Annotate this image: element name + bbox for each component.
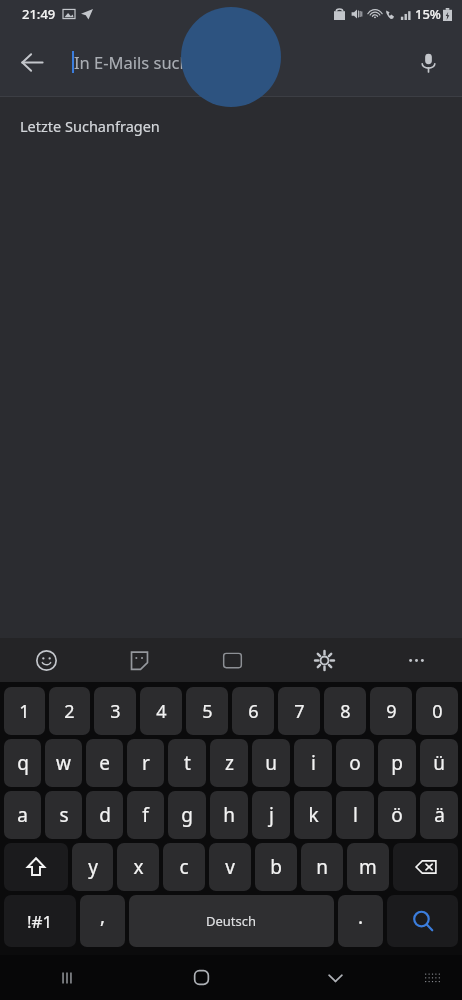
button[interactable]: n — [301, 843, 343, 891]
staticText: In E-Mails suchen — [74, 51, 210, 73]
button[interactable]: j — [252, 791, 290, 839]
staticText: z — [225, 750, 234, 776]
staticText: 21:49 — [22, 5, 56, 23]
button[interactable]: Back — [8, 38, 56, 86]
staticText: p — [391, 750, 403, 776]
staticText: i — [311, 750, 316, 776]
staticText: n — [316, 854, 328, 880]
button[interactable]: 9 — [370, 687, 412, 735]
staticText: l — [353, 802, 358, 828]
button[interactable]: a — [4, 791, 41, 839]
staticText: !#1 — [27, 910, 53, 933]
button[interactable]: ü — [420, 739, 458, 787]
staticText: h — [223, 802, 235, 828]
staticText: 6 — [248, 699, 259, 724]
button[interactable]: GIF — [186, 638, 278, 682]
button[interactable]: Voice search — [404, 38, 452, 86]
button[interactable]: p — [378, 739, 416, 787]
button[interactable]: 1 — [4, 687, 45, 735]
staticText: t — [184, 750, 191, 776]
button[interactable]: h — [210, 791, 248, 839]
button[interactable]: v — [209, 843, 251, 891]
button[interactable]: l — [336, 791, 374, 839]
button[interactable]: x — [117, 843, 159, 891]
button[interactable]: k — [294, 791, 332, 839]
button[interactable]: q — [4, 739, 41, 787]
button[interactable]: Deutsch — [129, 895, 334, 947]
staticText: 4 — [156, 699, 167, 724]
staticText: x — [133, 854, 144, 880]
staticText: 8 — [340, 699, 351, 724]
button[interactable]: 4 — [140, 687, 182, 735]
button[interactable]: 3 — [94, 687, 136, 735]
button[interactable]: ö — [378, 791, 416, 839]
staticText: y — [88, 854, 98, 880]
button[interactable]: Hide keyboard — [268, 955, 402, 1000]
staticText: . — [358, 904, 364, 930]
button[interactable]: u — [252, 739, 290, 787]
button[interactable]: z — [210, 739, 248, 787]
staticText: 5 — [202, 699, 213, 724]
button[interactable]: Search — [387, 895, 458, 947]
button[interactable]: r — [127, 739, 164, 787]
button[interactable]: e — [86, 739, 123, 787]
button[interactable]: !#1 — [4, 895, 76, 947]
staticText: 2 — [64, 699, 75, 724]
button[interactable]: 0 — [416, 687, 458, 735]
button[interactable]: Switch keyboard — [402, 955, 462, 1000]
button[interactable]: w — [45, 739, 82, 787]
button[interactable]: ä — [420, 791, 458, 839]
staticText: 1 — [19, 699, 30, 724]
button[interactable]: More options — [370, 638, 462, 682]
staticText: b — [270, 854, 282, 880]
button[interactable]: s — [45, 791, 82, 839]
staticText: d — [99, 802, 111, 828]
staticText: ö — [391, 802, 403, 828]
staticText: 9 — [386, 699, 397, 724]
staticText: f — [142, 802, 149, 828]
staticText: 0 — [432, 699, 443, 724]
button[interactable]: m — [347, 843, 389, 891]
button[interactable]: , — [80, 895, 125, 947]
button[interactable]: Recents — [0, 955, 134, 1000]
button[interactable]: i — [294, 739, 332, 787]
button[interactable]: 2 — [49, 687, 90, 735]
button[interactable]: 7 — [278, 687, 320, 735]
staticText: w — [56, 750, 71, 776]
staticText: a — [17, 802, 28, 828]
button[interactable]: 5 — [186, 687, 228, 735]
button[interactable]: g — [168, 791, 206, 839]
staticText: j — [269, 802, 274, 828]
staticText: g — [181, 802, 193, 828]
staticText: 3 — [110, 699, 121, 724]
button[interactable]: Home — [134, 955, 268, 1000]
button[interactable]: Backspace — [393, 843, 458, 891]
staticText: 7 — [294, 699, 305, 724]
staticText: , — [100, 903, 106, 929]
button[interactable]: d — [86, 791, 123, 839]
button[interactable]: . — [338, 895, 383, 947]
button[interactable]: Settings — [278, 638, 370, 682]
button[interactable]: y — [72, 843, 113, 891]
staticText: Letzte Suchanfragen — [20, 116, 160, 136]
button[interactable]: o — [336, 739, 374, 787]
staticText: s — [59, 802, 69, 828]
button[interactable]: t — [168, 739, 206, 787]
staticText: e — [99, 750, 110, 776]
button[interactable]: 8 — [324, 687, 366, 735]
staticText: Deutsch — [206, 912, 257, 930]
button[interactable]: Stickers — [93, 638, 186, 682]
button[interactable]: Emoji — [0, 638, 93, 682]
button[interactable]: b — [255, 843, 297, 891]
button[interactable]: c — [163, 843, 205, 891]
staticText: u — [265, 750, 277, 776]
button[interactable]: f — [127, 791, 164, 839]
button[interactable]: 6 — [232, 687, 274, 735]
staticText: 15% — [415, 5, 441, 23]
button[interactable]: Shift — [4, 843, 68, 891]
staticText: v — [225, 854, 235, 880]
button[interactable]: In E-Mails suchen — [72, 28, 404, 96]
staticText: k — [308, 802, 319, 828]
staticText: q — [17, 750, 29, 776]
staticText: ä — [434, 802, 445, 828]
